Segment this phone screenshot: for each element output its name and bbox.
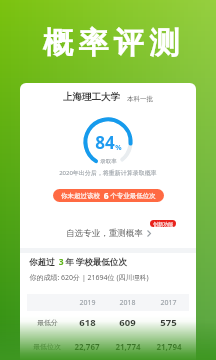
staticText: 2019 bbox=[79, 298, 96, 308]
staticText: 你超过 bbox=[29, 257, 55, 268]
staticText: 21,794 bbox=[156, 341, 182, 352]
staticText: 6 bbox=[100, 190, 110, 202]
staticText: 609 bbox=[119, 316, 136, 329]
staticText: 录取率 bbox=[100, 158, 117, 165]
button[interactable]: 自选专业，重测概率 bbox=[20, 224, 196, 242]
staticText: % bbox=[115, 143, 122, 153]
staticText: 创新功能 bbox=[153, 221, 173, 227]
staticText: 575 bbox=[160, 316, 177, 329]
staticText: 上海理工大学 bbox=[63, 91, 120, 103]
staticText: 年 学校最低位次 bbox=[65, 256, 127, 268]
staticText: 84 bbox=[95, 131, 115, 154]
staticText: 3 bbox=[55, 256, 65, 268]
staticText: 618 bbox=[79, 316, 96, 329]
staticText: 21,774 bbox=[115, 341, 141, 352]
button[interactable]: 你未超过该校 bbox=[53, 189, 164, 202]
staticText: 你未超过该校 bbox=[61, 192, 100, 200]
staticText: 2017 bbox=[160, 298, 177, 308]
staticText: 2018 bbox=[119, 298, 136, 308]
staticText: 最低分 bbox=[37, 318, 58, 327]
staticText: 你的成绩: 620分 | 21694位 (四川理科) bbox=[29, 273, 149, 283]
staticText: 本科一批 bbox=[127, 95, 153, 103]
staticText: 22,767 bbox=[74, 341, 100, 352]
staticText: 2020年出分后，将重新计算录取概率 bbox=[59, 169, 157, 177]
staticText: 最低位次 bbox=[33, 342, 61, 351]
staticText: 概率评测 bbox=[40, 24, 182, 62]
staticText: 自选专业，重测概率 bbox=[66, 228, 143, 239]
staticText: 个专业最低位次 bbox=[110, 192, 156, 200]
